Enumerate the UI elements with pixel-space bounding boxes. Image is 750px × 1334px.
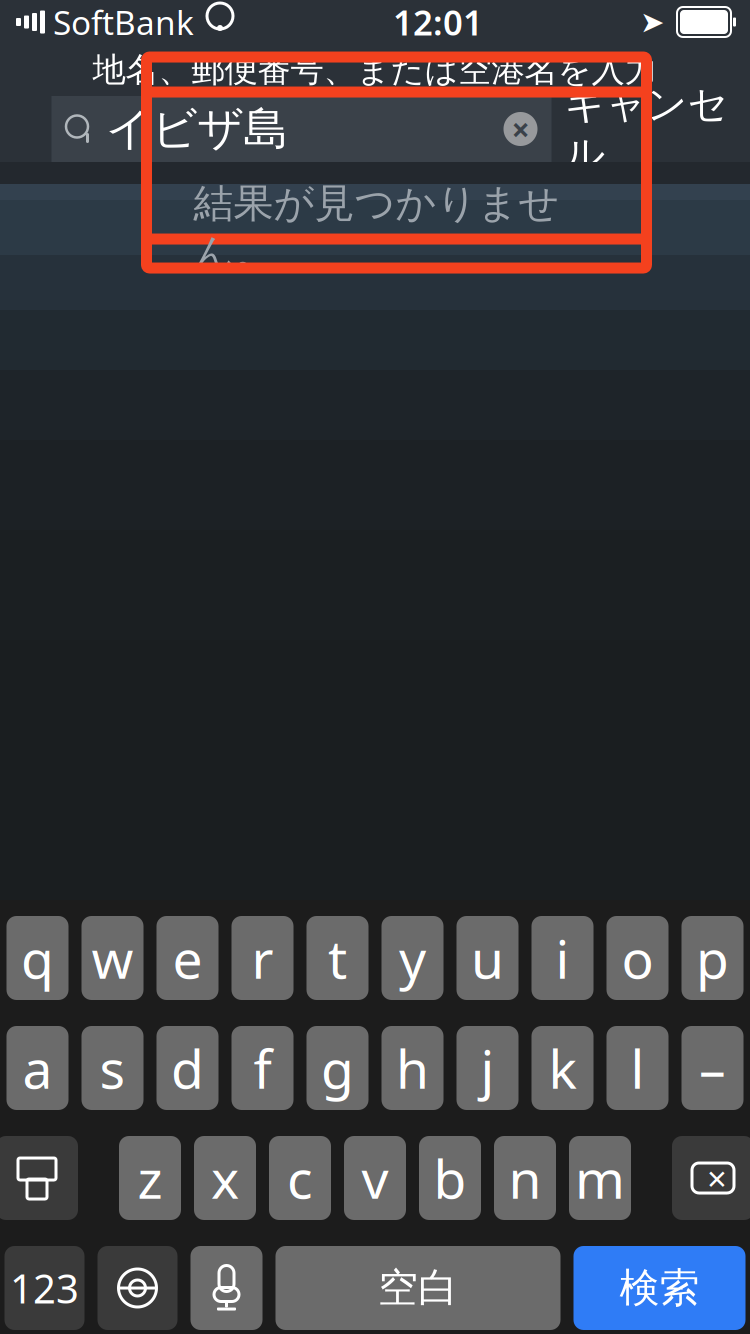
- staticText: x: [211, 1143, 239, 1213]
- button[interactable]: q: [6, 916, 68, 1000]
- button[interactable]: z: [119, 1136, 181, 1220]
- button[interactable]: 検索: [573, 1246, 745, 1330]
- button[interactable]: v: [344, 1136, 406, 1220]
- staticText: e: [172, 923, 202, 993]
- staticText: i: [555, 923, 569, 993]
- button[interactable]: m: [569, 1136, 631, 1220]
- button[interactable]: h: [381, 1026, 443, 1110]
- button[interactable]: b: [419, 1136, 481, 1220]
- staticText: ×: [707, 1155, 727, 1201]
- staticText: o: [621, 923, 653, 993]
- staticText: n: [508, 1143, 541, 1213]
- staticText: u: [471, 923, 504, 993]
- staticText: c: [287, 1143, 313, 1213]
- staticText: キャンセル: [564, 80, 728, 178]
- button[interactable]: –: [681, 1026, 743, 1110]
- staticText: j: [480, 1033, 494, 1103]
- button[interactable]: l: [606, 1026, 668, 1110]
- staticText: v: [361, 1143, 388, 1213]
- button[interactable]: u: [456, 916, 518, 1000]
- staticText: b: [433, 1143, 466, 1213]
- staticText: z: [137, 1143, 162, 1213]
- button[interactable]: x: [194, 1136, 256, 1220]
- button[interactable]: Next keyboard: [97, 1246, 177, 1330]
- button[interactable]: d: [156, 1026, 218, 1110]
- staticText: f: [253, 1033, 271, 1103]
- staticText: y: [399, 923, 426, 993]
- staticText: m: [575, 1143, 625, 1213]
- button[interactable]: 結果が見つかりません。: [146, 184, 646, 272]
- button[interactable]: i: [531, 916, 593, 1000]
- staticText: r: [251, 923, 273, 993]
- staticText: h: [396, 1033, 429, 1103]
- button[interactable]: p: [681, 916, 743, 1000]
- staticText: –: [699, 1033, 726, 1103]
- staticText: k: [548, 1033, 576, 1103]
- button[interactable]: k: [531, 1026, 593, 1110]
- staticText: w: [91, 923, 133, 993]
- staticText: a: [22, 1033, 52, 1103]
- staticText: 地名、郵便番号、または空港名を入力: [92, 49, 657, 90]
- staticText: ×: [511, 108, 529, 150]
- staticText: ➤: [640, 5, 665, 39]
- button[interactable]: Delete: [672, 1136, 750, 1220]
- staticText: 123: [10, 1261, 79, 1314]
- staticText: イビザ島: [105, 101, 288, 157]
- button[interactable]: r: [231, 916, 293, 1000]
- staticText: 結果が見つかりません。: [193, 179, 559, 277]
- button[interactable]: Dictation: [190, 1246, 262, 1330]
- staticText: g: [321, 1033, 354, 1103]
- button[interactable]: t: [306, 916, 368, 1000]
- button[interactable]: 空白: [275, 1246, 560, 1330]
- button[interactable]: s: [81, 1026, 143, 1110]
- staticText: d: [171, 1033, 204, 1103]
- button[interactable]: 123: [4, 1246, 84, 1330]
- button[interactable]: j: [456, 1026, 518, 1110]
- button[interactable]: o: [606, 916, 668, 1000]
- button[interactable]: Shift: [0, 1136, 78, 1220]
- staticText: q: [21, 923, 54, 993]
- staticText: p: [696, 923, 729, 993]
- staticText: 空白: [378, 1263, 458, 1312]
- staticText: 12:01: [393, 0, 483, 45]
- button[interactable]: f: [231, 1026, 293, 1110]
- staticText: t: [328, 923, 347, 993]
- button[interactable]: c: [269, 1136, 331, 1220]
- button[interactable]: イビザ島: [51, 96, 551, 162]
- button[interactable]: キャンセル: [551, 96, 741, 162]
- staticText: SoftBank: [53, 0, 194, 44]
- staticText: s: [99, 1033, 125, 1103]
- button[interactable]: w: [81, 916, 143, 1000]
- button[interactable]: e: [156, 916, 218, 1000]
- button[interactable]: y: [381, 916, 443, 1000]
- staticText: l: [630, 1033, 644, 1103]
- staticText: 検索: [619, 1263, 699, 1312]
- button[interactable]: a: [6, 1026, 68, 1110]
- button[interactable]: n: [494, 1136, 556, 1220]
- button[interactable]: g: [306, 1026, 368, 1110]
